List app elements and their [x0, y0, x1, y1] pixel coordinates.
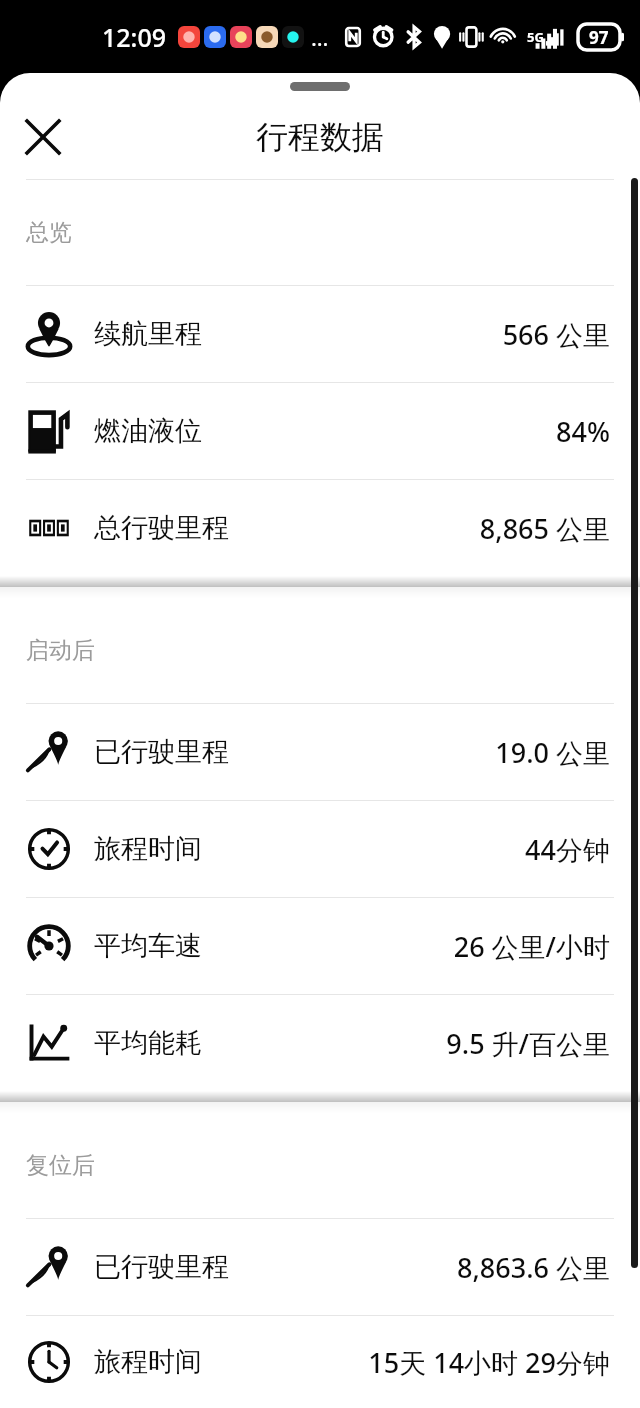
staticText: 19.0 公里: [495, 734, 610, 771]
staticText: 平均车速: [94, 929, 202, 963]
button[interactable]: 平均能耗: [0, 995, 640, 1091]
staticText: 12:09: [102, 20, 167, 54]
staticText: 总行驶里程: [94, 511, 229, 545]
staticText: 15天 14小时 29分钟: [368, 1344, 610, 1381]
staticText: 5G: [527, 28, 544, 46]
staticText: 44分钟: [525, 831, 610, 868]
staticText: 8,865 公里: [479, 510, 610, 547]
staticText: 总览: [26, 218, 72, 247]
staticText: …: [311, 22, 329, 52]
staticText: 9.5 升/百公里: [446, 1025, 610, 1062]
button[interactable]: 总行驶里程: [0, 480, 640, 576]
button[interactable]: 已行驶里程: [0, 1219, 640, 1315]
button[interactable]: 续航里程: [0, 286, 640, 382]
staticText: 84%: [556, 413, 610, 450]
staticText: 已行驶里程: [94, 735, 229, 769]
staticText: 97: [589, 26, 609, 49]
staticText: 行程数据: [256, 117, 384, 157]
staticText: 平均能耗: [94, 1026, 202, 1060]
button[interactable]: 已行驶里程: [0, 704, 640, 800]
staticText: 已行驶里程: [94, 1250, 229, 1284]
button[interactable]: 旅程时间: [0, 1316, 640, 1408]
staticText: 旅程时间: [94, 1345, 202, 1379]
staticText: 续航里程: [94, 317, 202, 351]
staticText: 8,863.6 公里: [457, 1249, 610, 1286]
button[interactable]: 旅程时间: [0, 801, 640, 897]
staticText: 566 公里: [502, 316, 610, 353]
button[interactable]: 燃油液位: [0, 383, 640, 479]
staticText: 燃油液位: [94, 414, 202, 448]
staticText: 26 公里/小时: [453, 928, 610, 965]
staticText: 复位后: [26, 1151, 95, 1180]
button[interactable]: 平均车速: [0, 898, 640, 994]
staticText: 旅程时间: [94, 832, 202, 866]
button[interactable]: 关闭: [14, 108, 72, 166]
staticText: 启动后: [26, 636, 95, 665]
